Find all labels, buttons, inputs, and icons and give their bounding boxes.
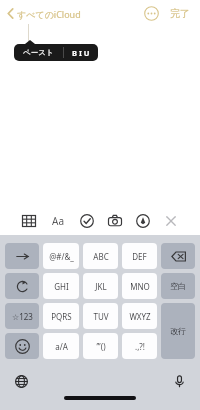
button[interactable]: 音声入力 xyxy=(170,372,188,390)
button[interactable]: ’”() xyxy=(83,333,118,359)
staticText: Aa xyxy=(52,214,64,228)
staticText: ☆123 xyxy=(12,311,33,322)
button[interactable]: 空白 xyxy=(161,273,195,299)
button[interactable]: マークアップ xyxy=(134,212,152,230)
button[interactable]: 表 xyxy=(20,212,38,230)
button[interactable]: TUV xyxy=(83,303,118,329)
button[interactable]: その他 xyxy=(144,6,159,21)
button[interactable]: DEF xyxy=(122,243,157,269)
staticText: 改行 xyxy=(170,326,186,336)
staticText: GHI xyxy=(54,281,69,292)
staticText: ’”() xyxy=(96,341,106,352)
staticText: ペースト xyxy=(23,48,54,57)
button[interactable]: WXYZ xyxy=(122,303,157,329)
staticText: ABC xyxy=(93,251,109,262)
button[interactable]: a/A xyxy=(43,333,79,359)
button[interactable]: 言語切り替え xyxy=(12,372,30,390)
button[interactable]: 閉じる xyxy=(162,212,180,230)
staticText: B I U xyxy=(72,48,90,58)
staticText: TUV xyxy=(93,311,109,322)
button[interactable]: チェックリスト xyxy=(78,212,96,230)
button[interactable]: ☆123 xyxy=(5,303,39,329)
staticText: a/A xyxy=(55,341,68,352)
staticText: WXYZ xyxy=(129,311,151,322)
button[interactable]: Aa xyxy=(48,211,68,231)
staticText: .,?! xyxy=(135,341,145,352)
staticText: MNO xyxy=(130,281,150,292)
button[interactable]: GHI xyxy=(43,273,79,299)
button[interactable]: ABC xyxy=(83,243,118,269)
staticText: DEF xyxy=(132,251,147,262)
button[interactable]: @#/&_ xyxy=(43,243,79,269)
button[interactable]: すべてのiCloud xyxy=(4,5,83,22)
button[interactable]: PQRS xyxy=(43,303,79,329)
staticText: 完了 xyxy=(170,7,190,20)
button[interactable]: MNO xyxy=(122,273,157,299)
button[interactable]: B I U xyxy=(64,44,98,61)
staticText: 空白 xyxy=(170,281,186,291)
button[interactable]: .,?! xyxy=(122,333,157,359)
button[interactable]: 取り消し xyxy=(5,273,39,299)
staticText: JKL xyxy=(95,281,107,292)
button[interactable]: 次候補 xyxy=(5,243,39,269)
button[interactable]: 完了 xyxy=(168,5,192,22)
button[interactable]: 絵文字 xyxy=(5,333,39,359)
staticText: すべてのiCloud xyxy=(17,8,81,20)
button[interactable]: 改行 xyxy=(161,303,195,359)
button[interactable]: 削除 xyxy=(161,243,195,269)
staticText: PQRS xyxy=(51,311,72,322)
staticText: @#/&_ xyxy=(49,251,74,262)
button[interactable]: JKL xyxy=(83,273,118,299)
button[interactable]: ペースト xyxy=(14,44,63,61)
button[interactable]: カメラ xyxy=(106,212,124,230)
